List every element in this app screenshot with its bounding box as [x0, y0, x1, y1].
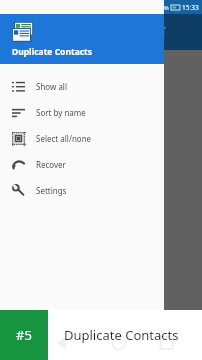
- staticText: Sort by name: [36, 107, 86, 118]
- staticText: Duplicate Contacts: [12, 46, 93, 58]
- button[interactable]: Select all/none: [0, 125, 164, 151]
- staticText: #5: [16, 326, 32, 344]
- staticText: Duplicate Contacts: [64, 326, 179, 344]
- staticText: 63%: [157, 4, 169, 12]
- button[interactable]: Show all: [0, 73, 164, 99]
- staticText: Show all: [36, 81, 67, 92]
- button[interactable]: Delete: [146, 19, 172, 45]
- button[interactable]: Recover: [0, 151, 164, 177]
- button[interactable]: Duplicate Contacts: [0, 14, 164, 64]
- staticText: Settings: [36, 185, 67, 196]
- button[interactable]: Settings: [0, 177, 164, 203]
- staticText: Recover: [36, 159, 66, 170]
- staticText: Select all/none: [36, 133, 92, 144]
- staticText: 15:33: [182, 3, 199, 12]
- button[interactable]: Sort by name: [0, 99, 164, 125]
